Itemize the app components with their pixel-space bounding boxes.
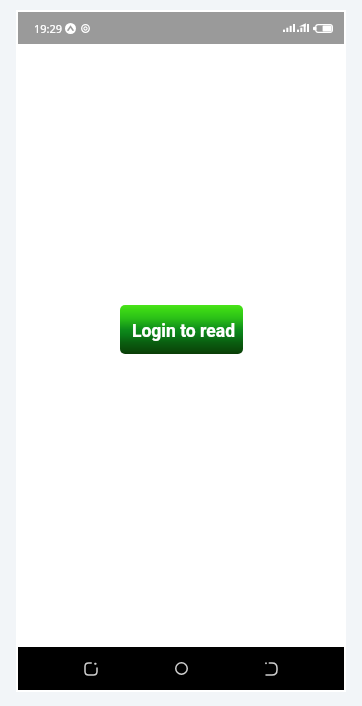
button[interactable]: Home: [157, 647, 205, 690]
staticText: 19:29: [34, 21, 63, 36]
button[interactable]: Back: [247, 647, 295, 690]
button[interactable]: Login to read: [120, 305, 243, 354]
staticText: Login to read: [132, 321, 235, 342]
button[interactable]: Recent apps: [67, 647, 115, 690]
